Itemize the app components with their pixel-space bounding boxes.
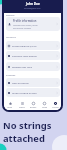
staticText: PROFILE [6,14,15,17]
staticText: John Doe [26,2,40,6]
staticText: Home [7,106,13,108]
staticText: Orders [19,106,25,108]
button[interactable]: Invite a friend & earn [6,88,60,97]
staticText: Redeem gift card [12,65,56,68]
staticText: Browse [30,106,37,108]
staticText: Gifts & friends [12,81,56,84]
staticText: Payment information [12,54,56,57]
staticText: Profile balance $6.50 [12,44,56,47]
button[interactable]: Home [4,100,16,110]
button[interactable]: Gifts & friends [6,78,60,87]
staticText: Manage your name, email [13,24,38,27]
button[interactable]: Profile balance $6.50 [6,41,60,50]
staticText: No strings [3,119,52,132]
staticText: ACCOUNT [6,36,16,39]
button[interactable]: Profile information [6,17,60,31]
staticText: johndoe@mail.com [24,7,41,9]
staticText: attached [3,132,45,145]
button[interactable]: Redeem gift card [6,62,60,71]
staticText: Account [52,106,59,108]
button[interactable]: Account [50,100,61,110]
staticText: SUPPORT [6,74,16,77]
button[interactable]: Payment information [6,51,60,60]
button[interactable]: Saved [39,100,50,110]
staticText: Profile information [13,19,37,23]
staticText: Invite a friend & earn [12,91,56,94]
button[interactable]: Orders [16,100,28,110]
button[interactable]: Browse [28,100,39,110]
staticText: and phone number [13,27,32,30]
staticText: Saved [42,106,48,108]
